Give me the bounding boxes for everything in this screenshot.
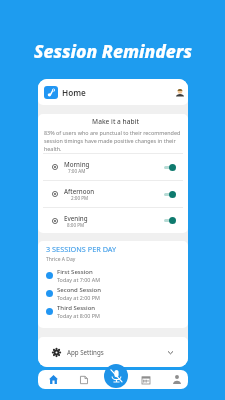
button[interactable]: Home	[38, 79, 188, 105]
button[interactable]: Documents	[73, 370, 95, 389]
staticText: 83% of users who are punctual to their r…	[44, 129, 181, 153]
staticText: Second Session	[57, 286, 102, 294]
button[interactable]: Morning	[38, 154, 188, 180]
button[interactable]: Second Session	[46, 284, 188, 302]
staticText: Afternoon	[64, 187, 95, 195]
button[interactable]: Home	[42, 370, 64, 389]
button[interactable]: Afternoon	[38, 181, 188, 207]
staticText: Today at 2:00 PM	[57, 294, 100, 301]
staticText: Evening	[64, 214, 88, 222]
button[interactable]: Profile	[166, 370, 188, 389]
button[interactable]: Mute microphone	[104, 364, 128, 388]
button[interactable]: Third Session	[46, 302, 188, 320]
staticText: Today at 8:00 PM	[57, 312, 100, 319]
button[interactable]: App Settings	[38, 337, 188, 367]
staticText: 8:00 PM	[67, 222, 85, 228]
staticText: Thrice A Day	[46, 256, 76, 263]
staticText: Morning	[64, 160, 90, 168]
button[interactable]: First Session	[46, 266, 188, 284]
staticText: 7:00 AM	[68, 168, 86, 174]
staticText: Session Reminders	[34, 39, 192, 63]
button[interactable]: Evening	[38, 208, 188, 233]
staticText: 3 SESSIONS PER DAY	[46, 244, 117, 254]
button[interactable]: Calendar	[135, 370, 157, 389]
staticText: Third Session	[57, 304, 96, 312]
staticText: App Settings	[67, 348, 104, 356]
staticText: Home	[62, 87, 86, 98]
staticText: Today at 7:00 AM	[57, 276, 101, 283]
staticText: First Session	[57, 268, 93, 276]
staticText: 2:00 PM	[71, 195, 89, 201]
staticText: Make it a habit	[43, 117, 188, 126]
